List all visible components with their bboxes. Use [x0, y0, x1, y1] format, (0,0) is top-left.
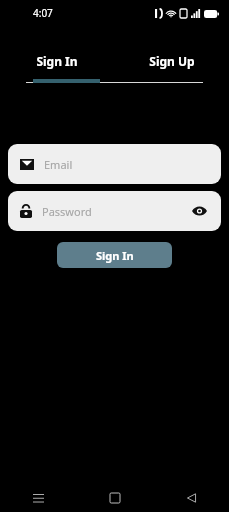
button[interactable]: Password [8, 191, 221, 231]
button[interactable]: Sign In [0, 48, 114, 74]
staticText: Sign Up [149, 53, 195, 69]
button[interactable]: Sign Up [114, 48, 229, 74]
button[interactable]: Show password [189, 201, 209, 221]
staticText: Email [44, 157, 73, 172]
staticText: 4:07 [33, 6, 53, 20]
staticText: Sign In [36, 53, 78, 69]
button[interactable]: Email [8, 144, 221, 184]
button[interactable]: Home [77, 484, 153, 512]
button[interactable]: Sign In [57, 242, 172, 268]
staticText: Password [42, 204, 92, 219]
button[interactable]: Back [153, 484, 229, 512]
staticText: Sign In [96, 248, 134, 263]
button[interactable]: Recent apps [0, 484, 77, 512]
